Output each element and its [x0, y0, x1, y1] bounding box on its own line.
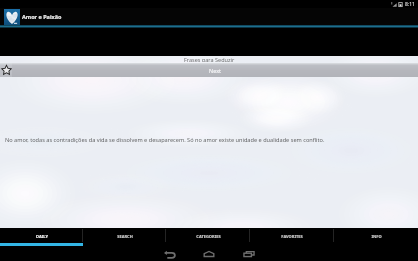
- button[interactable]: FAVORITES: [250, 228, 334, 246]
- staticText: Frases para Seduzir: [184, 56, 235, 62]
- button[interactable]: DAILY: [0, 228, 83, 246]
- staticText: No amor, todas as contradições da vida s…: [5, 136, 325, 144]
- staticText: Amor e Paixão: [22, 13, 62, 20]
- staticText: DAILY: [36, 234, 48, 239]
- button[interactable]: INFO: [334, 228, 418, 246]
- button[interactable]: CATEGORIES: [166, 228, 250, 246]
- button[interactable]: Next: [12, 63, 418, 77]
- staticText: SEARCH: [117, 234, 133, 239]
- button[interactable]: Favorite: [0, 63, 12, 77]
- staticText: 8:11: [405, 1, 415, 8]
- button[interactable]: Back: [149, 246, 189, 261]
- staticText: FAVORITES: [281, 234, 303, 239]
- button[interactable]: SEARCH: [83, 228, 166, 246]
- staticText: CATEGORIES: [196, 234, 221, 239]
- staticText: INFO: [371, 234, 382, 239]
- button[interactable]: Recents: [229, 246, 269, 261]
- staticText: Next: [209, 67, 222, 74]
- button[interactable]: Home: [189, 246, 229, 261]
